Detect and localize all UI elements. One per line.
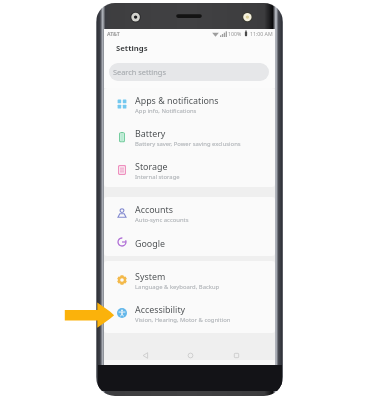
- staticText: System: [135, 270, 166, 282]
- staticText: Settings: [116, 43, 148, 53]
- staticText: Storage: [135, 160, 168, 172]
- button[interactable]: Battery: [104, 121, 275, 154]
- staticText: Vision, Hearing, Motor & cognition: [135, 316, 231, 324]
- button[interactable]: Google: [104, 230, 275, 256]
- button[interactable]: Home: [180, 344, 200, 365]
- button[interactable]: Apps & notifications: [104, 88, 275, 121]
- button[interactable]: Search settings: [109, 63, 269, 81]
- staticText: AT&T: [107, 30, 120, 37]
- staticText: App info, Notifications: [135, 107, 197, 115]
- staticText: 100%: [228, 30, 242, 37]
- staticText: Accessibility: [135, 303, 186, 315]
- staticText: Google: [135, 237, 166, 249]
- button[interactable]: System: [104, 264, 275, 297]
- button[interactable]: Storage: [104, 154, 275, 187]
- button[interactable]: Accessibility: [104, 297, 275, 330]
- staticText: Battery: [135, 127, 166, 139]
- staticText: Language & keyboard, Backup: [135, 283, 220, 291]
- button[interactable]: Back: [135, 344, 155, 365]
- staticText: Auto-sync accounts: [135, 216, 189, 224]
- staticText: Battery saver, Power saving exclusions: [135, 140, 241, 148]
- staticText: Apps & notifications: [135, 94, 219, 106]
- staticText: Search settings: [113, 67, 166, 77]
- staticText: Internal storage: [135, 173, 180, 181]
- button[interactable]: Recents: [226, 344, 246, 365]
- staticText: 11:00 AM: [250, 30, 273, 37]
- button[interactable]: Accounts: [104, 197, 275, 230]
- staticText: Accounts: [135, 203, 174, 215]
